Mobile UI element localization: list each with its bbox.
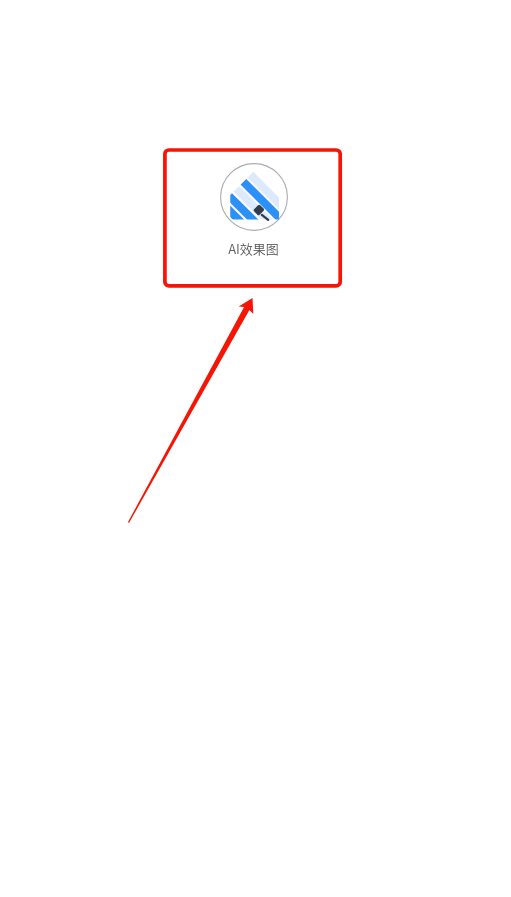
staticText: AI效果图 — [228, 239, 279, 258]
button[interactable]: AI效果图 — [197, 163, 310, 271]
